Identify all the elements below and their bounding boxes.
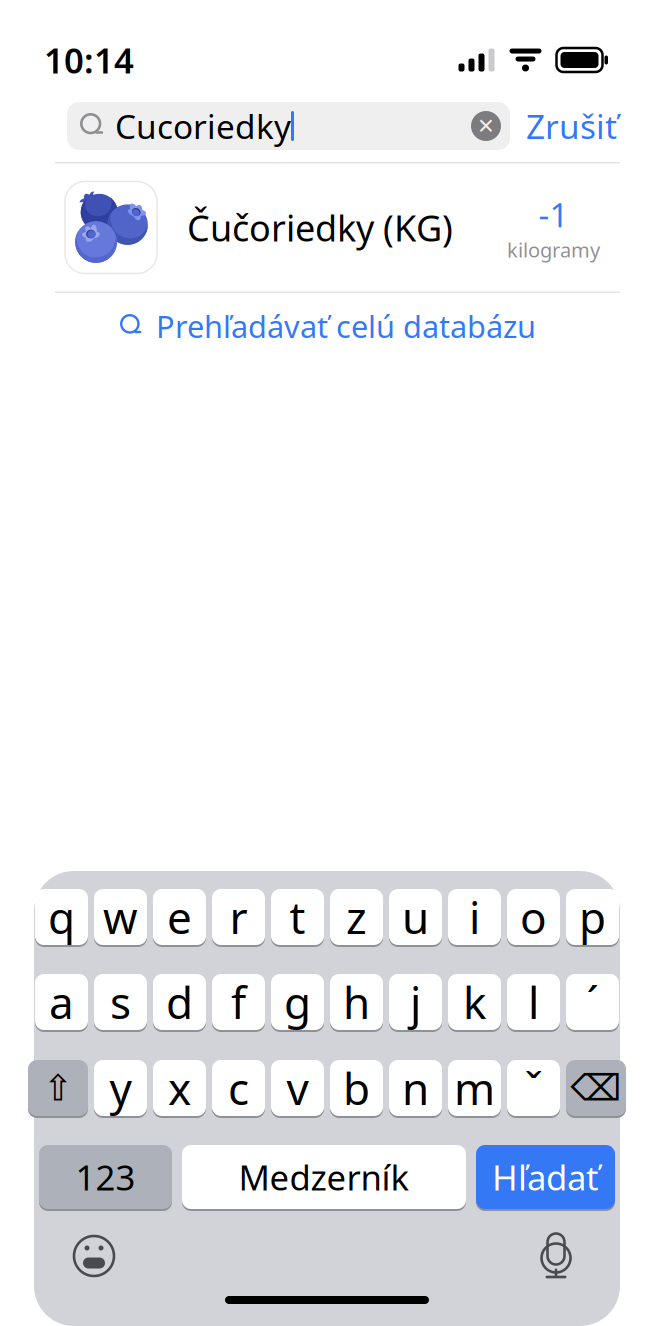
staticText: m: [454, 1059, 495, 1117]
button[interactable]: Dictate: [520, 1224, 592, 1288]
staticText: d: [166, 973, 193, 1031]
staticText: l: [528, 973, 539, 1031]
staticText: Hľadať: [492, 1154, 599, 1200]
button[interactable]: s: [94, 973, 147, 1031]
button[interactable]: Shift: [28, 1059, 88, 1117]
button[interactable]: Clear text: [462, 102, 510, 150]
staticText: ˇ: [524, 1059, 542, 1117]
button[interactable]: h: [330, 973, 383, 1031]
button[interactable]: t: [271, 888, 324, 946]
staticText: u: [402, 888, 429, 946]
button[interactable]: f: [212, 973, 265, 1031]
button[interactable]: Hľadať: [476, 1144, 615, 1210]
button[interactable]: x: [153, 1059, 206, 1117]
staticText: i: [469, 888, 480, 946]
staticText: ⌫: [570, 1068, 621, 1108]
staticText: q: [48, 888, 75, 946]
button[interactable]: g: [271, 973, 324, 1031]
button[interactable]: j: [389, 973, 442, 1031]
staticText: a: [49, 973, 74, 1031]
staticText: 123: [75, 1154, 135, 1200]
staticText: j: [410, 973, 421, 1031]
staticText: s: [110, 973, 131, 1031]
staticText: v: [286, 1059, 308, 1117]
button[interactable]: k: [448, 973, 501, 1031]
staticText: y: [109, 1059, 131, 1117]
button[interactable]: o: [507, 888, 560, 946]
button[interactable]: e: [153, 888, 206, 946]
staticText: Medzerník: [238, 1154, 409, 1200]
staticText: c: [228, 1059, 249, 1117]
button[interactable]: i: [448, 888, 501, 946]
button[interactable]: n: [389, 1059, 442, 1117]
staticText: 10:14: [44, 37, 134, 83]
button[interactable]: ´: [566, 973, 619, 1031]
button[interactable]: Emoji keyboard: [58, 1224, 130, 1288]
staticText: Zrušiť: [526, 104, 617, 148]
button[interactable]: q: [35, 888, 88, 946]
staticText: f: [231, 973, 246, 1031]
button[interactable]: y: [94, 1059, 147, 1117]
button[interactable]: Prehľadávať celú databázu: [0, 293, 656, 359]
staticText: w: [103, 888, 138, 946]
staticText: p: [579, 888, 606, 946]
staticText: e: [167, 888, 192, 946]
staticText: 🫐: [69, 189, 152, 266]
button[interactable]: d: [153, 973, 206, 1031]
staticText: k: [463, 973, 486, 1031]
staticText: Čučoriedky (KG): [187, 204, 453, 251]
staticText: g: [284, 973, 311, 1031]
staticText: Prehľadávať celú databázu: [156, 306, 536, 346]
staticText: ✕: [477, 114, 495, 138]
button[interactable]: v: [271, 1059, 324, 1117]
staticText: Cucoriedky: [115, 104, 291, 148]
staticText: -1: [538, 192, 568, 236]
staticText: n: [402, 1059, 429, 1117]
button[interactable]: Zrušiť: [510, 102, 633, 150]
staticText: ´: [586, 973, 598, 1031]
button[interactable]: a: [35, 973, 88, 1031]
button[interactable]: w: [94, 888, 147, 946]
staticText: r: [229, 888, 247, 946]
staticText: x: [168, 1059, 191, 1117]
staticText: z: [346, 888, 367, 946]
staticText: kilogramy: [507, 236, 600, 263]
button[interactable]: m: [448, 1059, 501, 1117]
button[interactable]: ˇ: [507, 1059, 560, 1117]
staticText: t: [289, 888, 305, 946]
staticText: b: [343, 1059, 370, 1117]
button[interactable]: b: [330, 1059, 383, 1117]
button[interactable]: c: [212, 1059, 265, 1117]
button[interactable]: 123: [39, 1144, 172, 1210]
staticText: ⇧: [43, 1068, 73, 1108]
button[interactable]: z: [330, 888, 383, 946]
button[interactable]: r: [212, 888, 265, 946]
staticText: h: [343, 973, 370, 1031]
button[interactable]: l: [507, 973, 560, 1031]
button[interactable]: p: [566, 888, 619, 946]
staticText: o: [520, 888, 547, 946]
button[interactable]: u: [389, 888, 442, 946]
button[interactable]: Delete: [566, 1059, 626, 1117]
button[interactable]: 🫐: [0, 163, 656, 291]
button[interactable]: Medzerník: [182, 1144, 466, 1210]
